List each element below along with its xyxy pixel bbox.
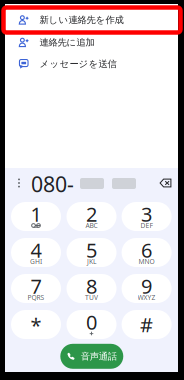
staticText: 4 [30, 237, 41, 263]
staticText: WXYZ [138, 293, 156, 302]
staticText: 0 [86, 309, 97, 335]
staticText: 6 [141, 237, 152, 263]
staticText: # [140, 311, 153, 338]
button[interactable]: 新しい連絡先を作成 [5, 9, 178, 31]
button[interactable]: 連絡先に追加 [5, 31, 178, 53]
staticText: * [30, 312, 41, 338]
staticText: TUV [85, 293, 98, 302]
staticText: 音声通話 [81, 351, 117, 362]
staticText: PQRS [27, 293, 44, 302]
staticText: 連絡先に追加 [39, 37, 94, 48]
button[interactable]: 7 [11, 274, 61, 303]
button[interactable]: 6 [122, 238, 172, 267]
staticText: 080- [31, 170, 74, 198]
staticText: 2 [86, 201, 97, 227]
button[interactable]: 4 [11, 238, 61, 267]
button[interactable]: * [11, 310, 61, 339]
button[interactable]: 2 [66, 202, 116, 231]
staticText: 3 [141, 201, 152, 227]
staticText: DEF [141, 221, 153, 230]
staticText: 9 [141, 273, 152, 299]
staticText: 新しい連絡先を作成 [39, 14, 123, 26]
button[interactable]: 8 [66, 274, 116, 303]
staticText: 7 [30, 273, 41, 299]
staticText: 5 [86, 237, 97, 263]
staticText: 8 [86, 273, 97, 299]
staticText: ABC [85, 221, 97, 230]
staticText: GHI [30, 257, 42, 266]
button[interactable]: # [122, 310, 172, 339]
button[interactable]: 5 [66, 238, 116, 267]
button[interactable]: 3 [122, 202, 172, 231]
button[interactable]: 1 [11, 202, 61, 231]
button[interactable]: 削除 [154, 173, 176, 193]
button[interactable]: 0 [66, 310, 116, 339]
staticText: メッセージを送信 [39, 58, 116, 70]
staticText: MNO [139, 257, 155, 266]
button[interactable]: メッセージを送信 [5, 53, 178, 75]
staticText: 1 [30, 201, 41, 227]
button[interactable]: 音声通話 [60, 344, 123, 369]
staticText: JKL [87, 257, 96, 266]
button[interactable]: 9 [122, 274, 172, 303]
